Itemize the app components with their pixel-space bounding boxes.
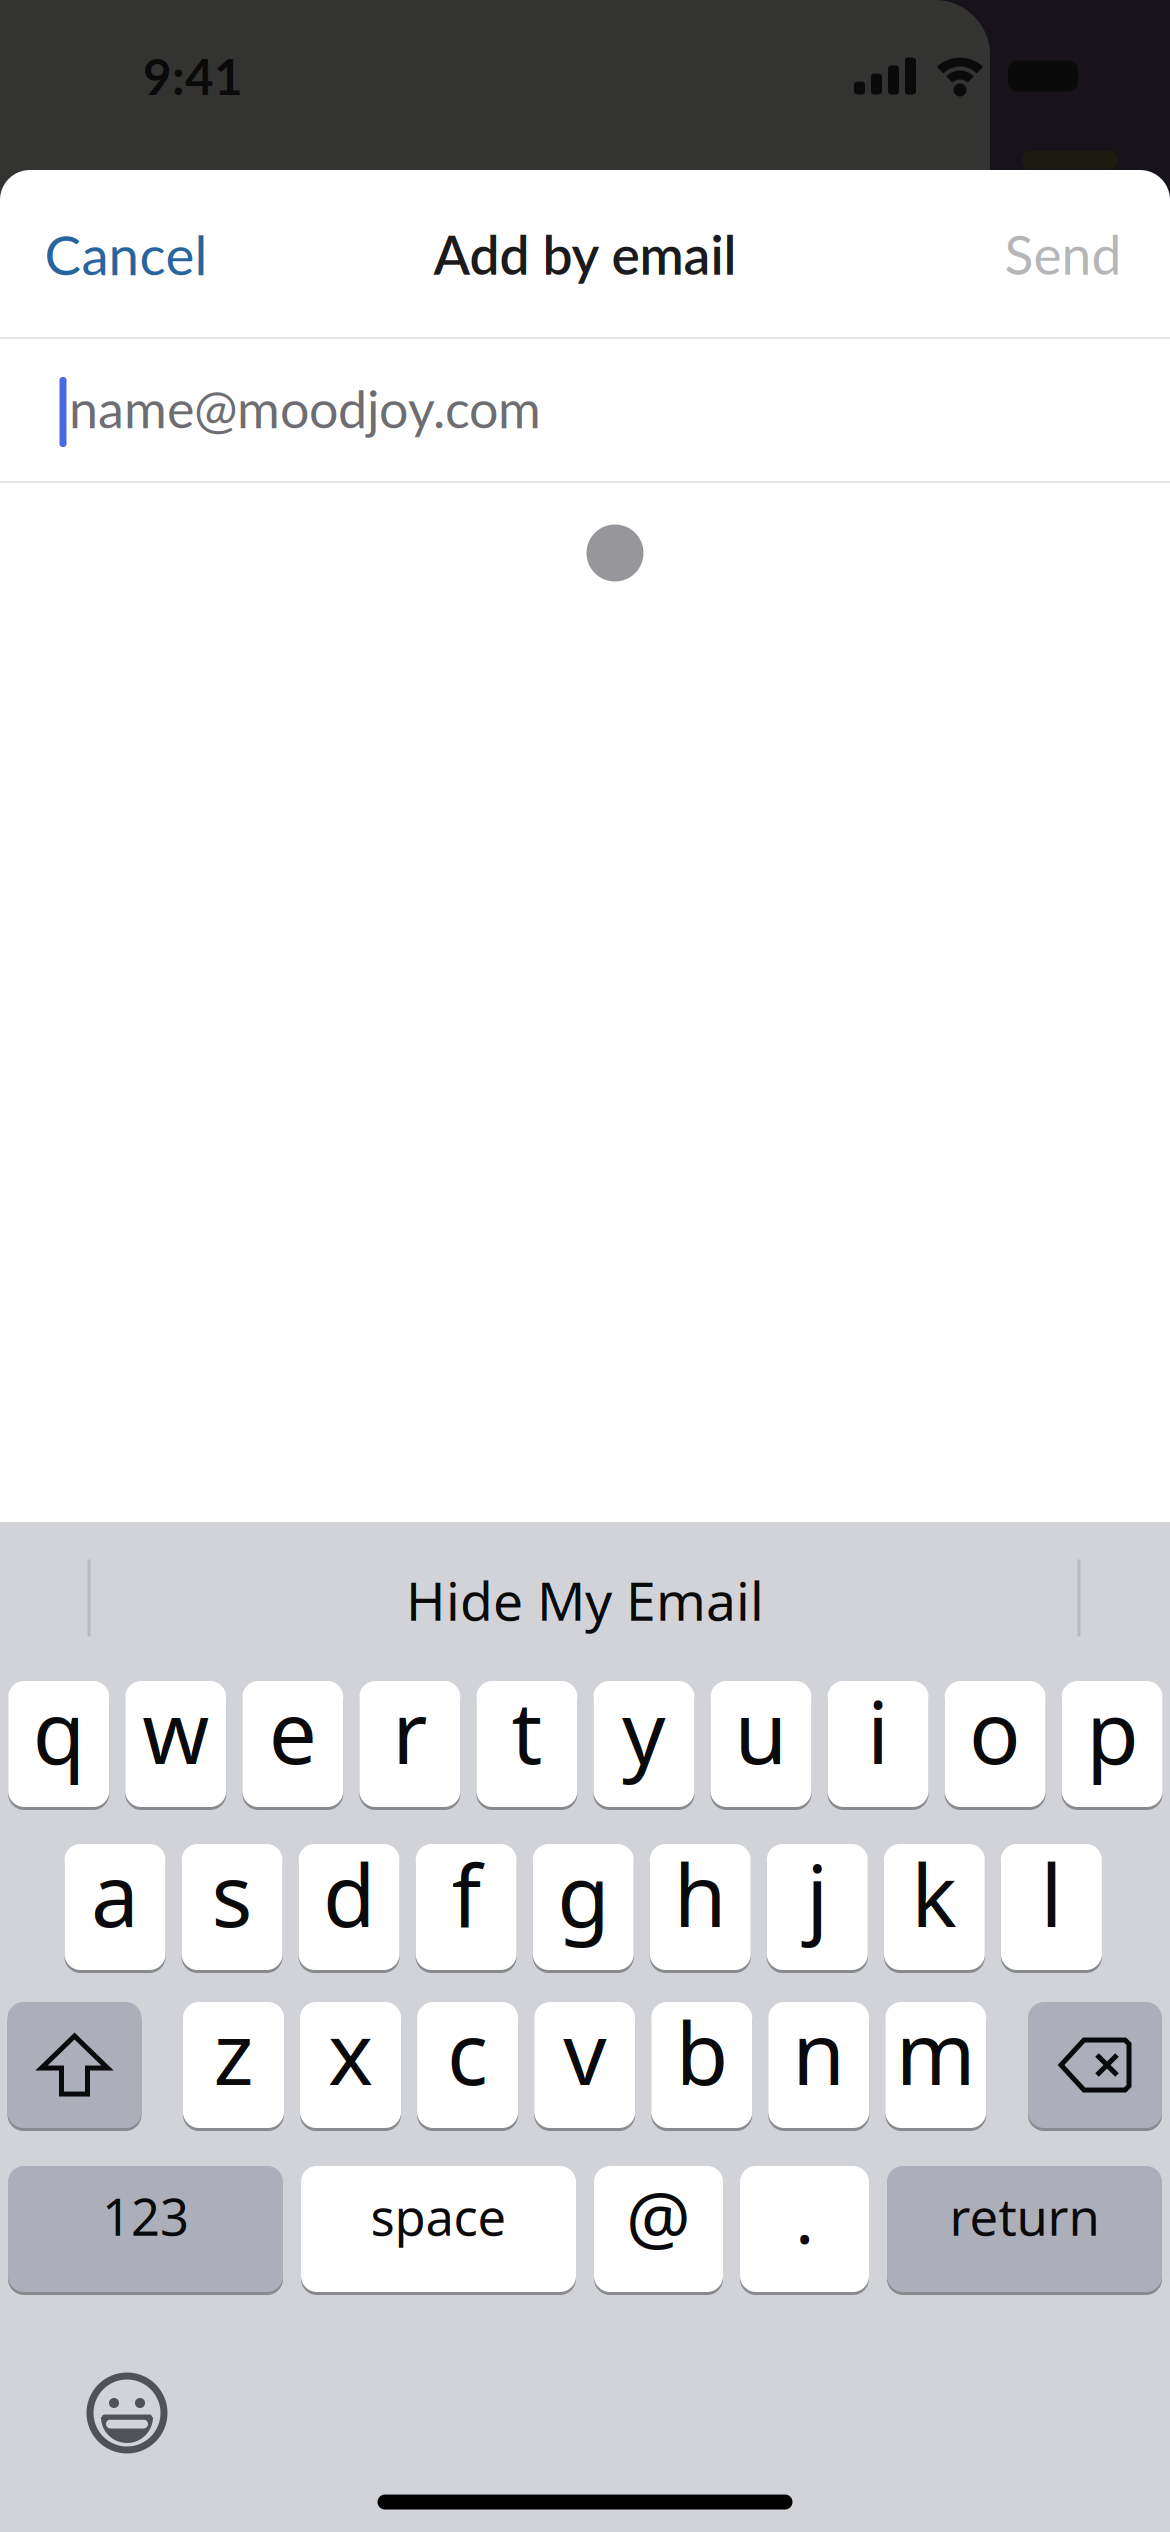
staticText: s [212, 1837, 253, 1951]
staticText: c [447, 1995, 488, 2109]
button[interactable]: w [125, 1679, 226, 1809]
button[interactable]: 123 [8, 2164, 283, 2294]
staticText: a [91, 1837, 139, 1951]
button[interactable]: space [301, 2164, 576, 2294]
staticText: w [142, 1674, 209, 1788]
staticText: l [1040, 1837, 1062, 1951]
button[interactable]: t [476, 1679, 577, 1809]
staticText: e [269, 1674, 317, 1788]
button[interactable]: k [884, 1842, 985, 1972]
staticText: return [949, 2182, 1099, 2250]
button[interactable]: return [887, 2164, 1162, 2294]
staticText: i [867, 1674, 889, 1788]
staticText: d [323, 1837, 375, 1951]
staticText: 9:41 [143, 46, 243, 106]
button[interactable]: h [650, 1842, 751, 1972]
staticText: Add by email [433, 222, 736, 286]
staticText: Send [1004, 222, 1121, 286]
staticText: n [792, 1995, 845, 2109]
staticText: v [563, 1995, 606, 2109]
staticText: Cancel [44, 221, 207, 287]
button[interactable]: u [710, 1679, 811, 1809]
staticText: p [1086, 1674, 1138, 1788]
staticText: . [795, 2168, 814, 2264]
staticText: space [370, 2182, 506, 2250]
button[interactable]: Cancel [44, 221, 207, 287]
button[interactable]: a [64, 1842, 165, 1972]
staticText: y [622, 1674, 666, 1788]
staticText: f [452, 1837, 481, 1951]
staticText: b [676, 1995, 728, 2109]
button[interactable]: x [300, 2000, 401, 2130]
staticText: z [213, 1995, 253, 2109]
button[interactable]: i [828, 1679, 929, 1809]
button[interactable]: f [416, 1842, 517, 1972]
staticText: g [557, 1837, 609, 1951]
button[interactable]: r [359, 1679, 460, 1809]
button[interactable]: v [534, 2000, 635, 2130]
staticText: Hide My Email [406, 1565, 764, 1635]
staticText: q [33, 1674, 85, 1788]
staticText: u [734, 1674, 787, 1788]
button[interactable]: z [183, 2000, 284, 2130]
button[interactable]: Emoji [86, 2372, 168, 2454]
staticText: x [328, 1995, 373, 2109]
button[interactable]: y [593, 1679, 694, 1809]
button[interactable]: Delete [1028, 2000, 1162, 2130]
button[interactable]: j [767, 1842, 868, 1972]
button[interactable]: e [242, 1679, 343, 1809]
button[interactable]: Hide My Email [406, 1565, 764, 1635]
staticText: t [511, 1674, 542, 1788]
button[interactable]: g [533, 1842, 634, 1972]
button[interactable]: n [768, 2000, 869, 2130]
button[interactable]: @ [594, 2164, 723, 2294]
staticText: @ [626, 2168, 691, 2264]
button[interactable]: s [182, 1842, 283, 1972]
staticText: h [674, 1837, 727, 1951]
button[interactable]: p [1062, 1679, 1163, 1809]
staticText: j [806, 1837, 828, 1951]
staticText: o [969, 1674, 1021, 1788]
staticText: name@moodjoy.com [69, 377, 541, 439]
staticText: m [896, 1995, 976, 2109]
button[interactable]: l [1001, 1842, 1102, 1972]
button[interactable]: Shift [7, 2000, 141, 2130]
button[interactable]: d [299, 1842, 400, 1972]
button[interactable]: m [885, 2000, 986, 2130]
staticText: 123 [102, 2182, 189, 2250]
button[interactable]: . [740, 2164, 869, 2294]
button[interactable]: q [8, 1679, 109, 1809]
staticText: k [911, 1837, 957, 1951]
staticText: r [392, 1674, 427, 1788]
button[interactable]: Send [1004, 222, 1121, 286]
button[interactable]: o [945, 1679, 1046, 1809]
button[interactable]: c [417, 2000, 518, 2130]
button[interactable]: b [651, 2000, 752, 2130]
